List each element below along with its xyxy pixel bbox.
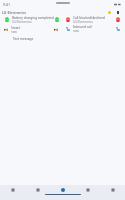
staticText: Smart xyxy=(11,26,20,30)
button[interactable]: Call blocked/declined xyxy=(66,16,120,23)
staticText: now xyxy=(73,29,79,32)
staticText: LG Electronics xyxy=(73,20,93,23)
button[interactable]: Battery charging completed xyxy=(5,16,59,23)
staticText: Call blocked/declined xyxy=(73,16,105,20)
button[interactable]: Messages xyxy=(0,185,25,200)
staticText: now xyxy=(11,30,17,33)
staticText: Inbound call xyxy=(73,25,92,29)
staticText: LG Electronics xyxy=(12,20,32,23)
staticText: Battery charging completed xyxy=(12,16,54,20)
button[interactable]: Apps xyxy=(75,185,100,200)
button[interactable]: Settings xyxy=(115,10,120,15)
staticText: 9:41 xyxy=(3,2,11,7)
staticText: LG Electronics xyxy=(2,10,26,15)
button[interactable]: Gallery xyxy=(25,185,50,200)
button[interactable]: Inbound call xyxy=(66,25,120,32)
button[interactable]: Home xyxy=(50,185,75,200)
staticText: Text message xyxy=(13,37,34,41)
button[interactable]: Smart xyxy=(4,26,58,33)
button[interactable]: Alerts xyxy=(107,10,112,15)
button[interactable]: Text message xyxy=(13,36,43,41)
button[interactable]: Camera xyxy=(100,185,125,200)
